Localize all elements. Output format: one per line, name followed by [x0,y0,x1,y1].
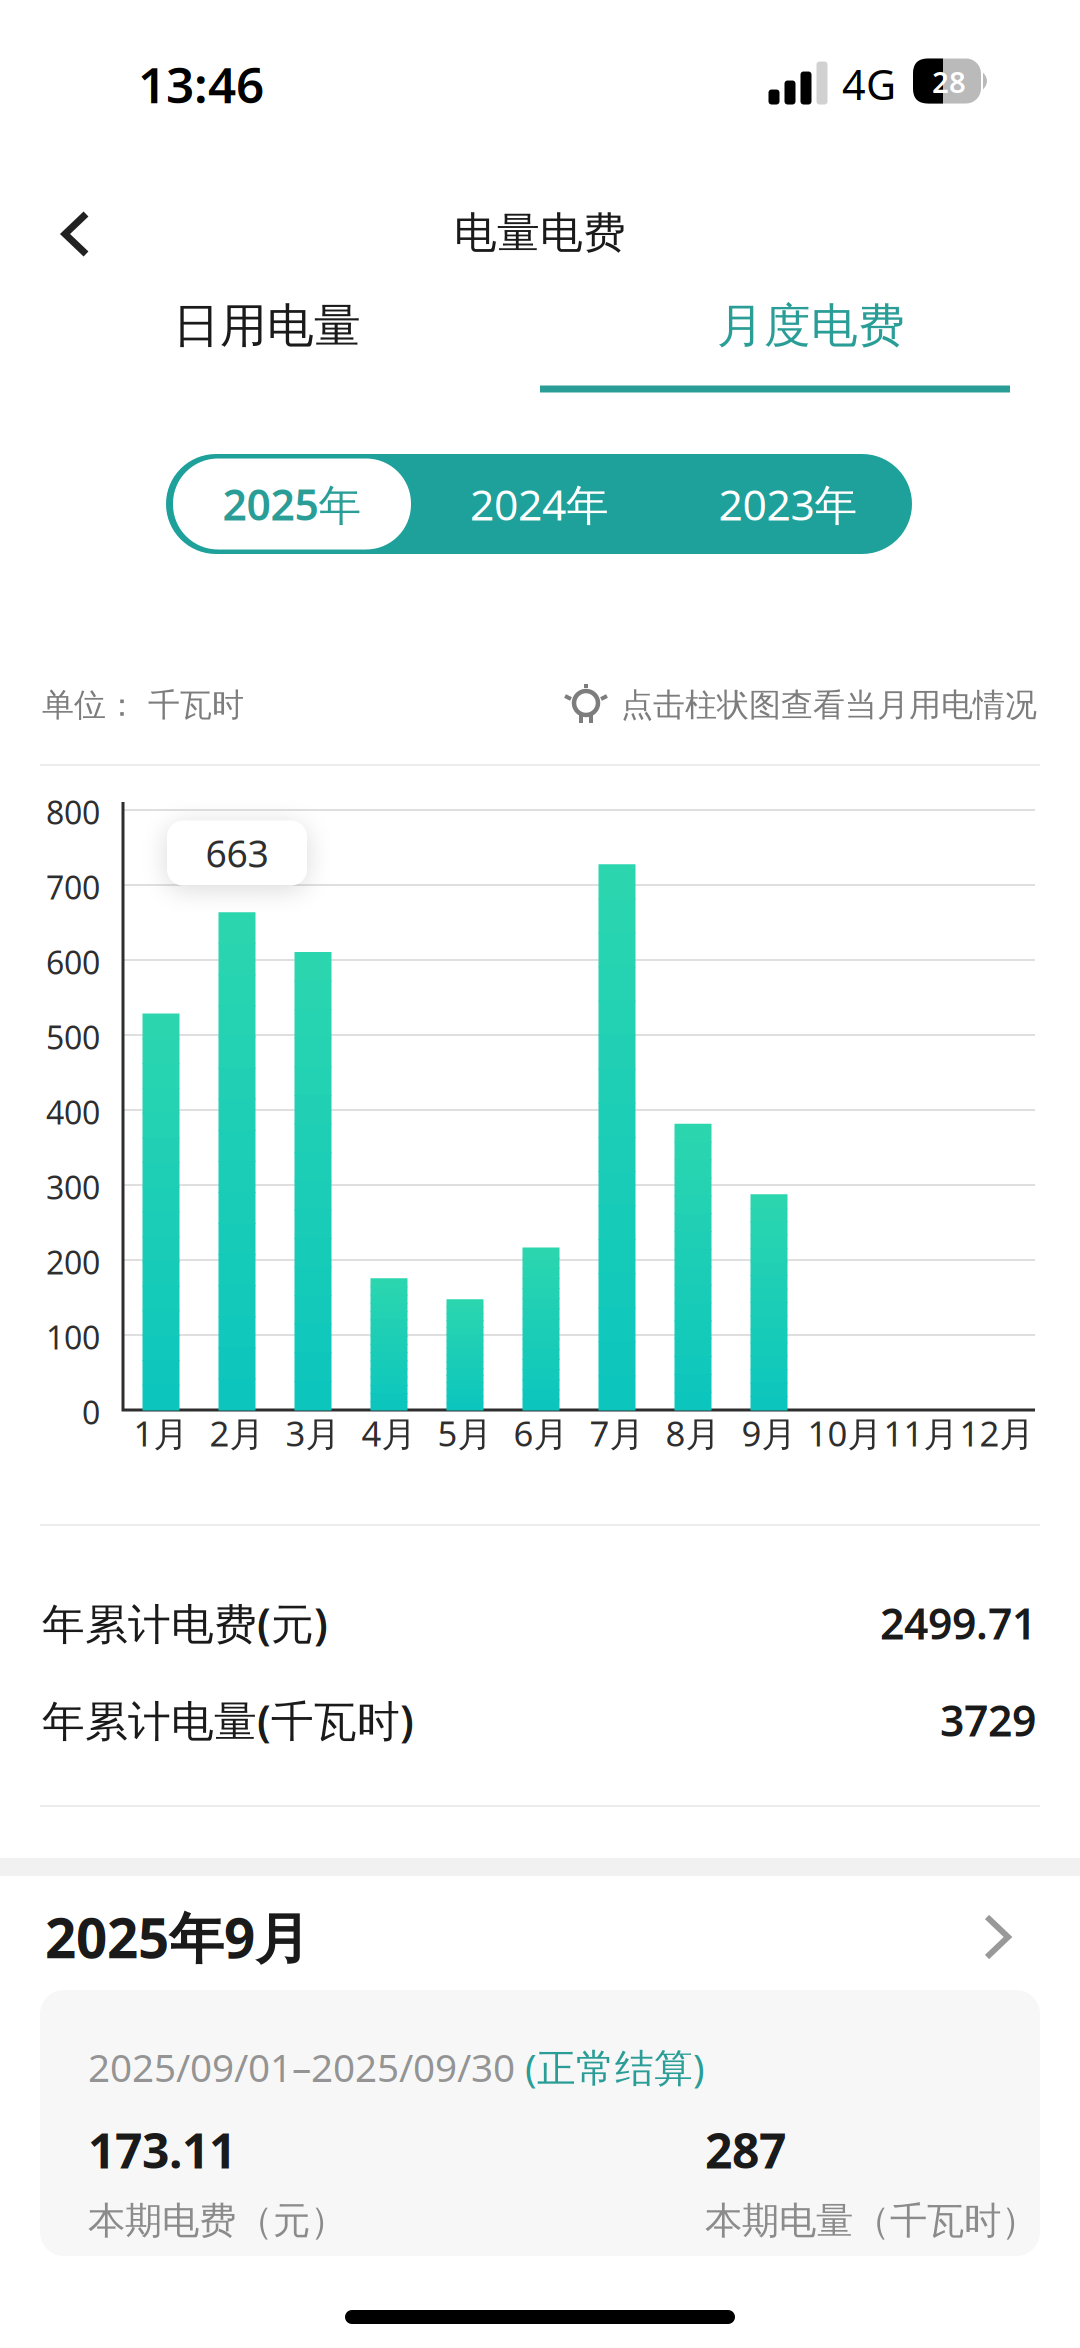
staticText: 9月 [741,1410,796,1456]
staticText: 8月 [665,1410,720,1456]
staticText: 点击柱状图查看当月用电情况 [621,685,1037,725]
staticText: 4G [842,57,896,111]
staticText: 本期电费（元） [88,2198,347,2244]
button[interactable]: 2025年9月 [0,1900,1080,1974]
staticText: 2025年 [222,476,361,532]
button[interactable]: 2024年 [415,454,664,554]
staticText: 月度电费 [717,297,905,355]
staticText: 0 [82,1391,100,1433]
button[interactable]: 2025年 [168,454,416,554]
staticText: 年累计电费(元) [42,1595,328,1651]
staticText: 4月 [361,1410,416,1456]
staticText: 2023年 [718,476,857,532]
staticText: 2月 [209,1410,264,1456]
staticText: 12月 [959,1410,1034,1456]
staticText: 173.11 [88,2118,236,2182]
staticText: 7月 [589,1410,644,1456]
staticText: 单位： 千瓦时 [42,685,244,725]
button[interactable]: 2023年 [664,454,912,554]
staticText: 287 [705,2118,786,2182]
button[interactable]: 月度电费 [541,286,1080,366]
staticText: 400 [46,1091,100,1133]
staticText: 10月 [807,1410,882,1456]
staticText: 3729 [940,1692,1036,1748]
staticText: 2025年9月 [45,1901,310,1973]
staticText: 日用电量 [173,297,361,355]
staticText: (正常结算) [525,2041,705,2093]
staticText: 电量电费 [454,207,626,259]
staticText: 300 [46,1166,100,1208]
staticText: 800 [46,791,100,833]
staticText: 663 [205,828,268,878]
staticText: 5月 [437,1410,492,1456]
staticText: 6月 [513,1410,568,1456]
staticText: 13:46 [138,51,264,117]
staticText: 2499.71 [880,1595,1036,1651]
staticText: 200 [46,1241,100,1283]
staticText: 700 [46,866,100,908]
staticText: 年累计电量(千瓦时) [42,1692,414,1748]
staticText: 600 [46,941,100,983]
staticText: 28 [932,62,966,101]
staticText: 500 [46,1016,100,1058]
staticText: 本期电量（千瓦时） [705,2198,1038,2244]
staticText: 100 [46,1316,100,1358]
staticText: 11月 [883,1410,958,1456]
staticText: 1月 [133,1410,188,1456]
button[interactable]: Back [41,199,111,269]
staticText: 3月 [285,1410,340,1456]
button[interactable]: 2025/09/01–2025/09/30 [40,1990,1040,2256]
button[interactable]: 日用电量 [0,286,537,366]
staticText: 2025/09/01–2025/09/30 [88,2041,525,2093]
staticText: 2024年 [470,476,609,532]
